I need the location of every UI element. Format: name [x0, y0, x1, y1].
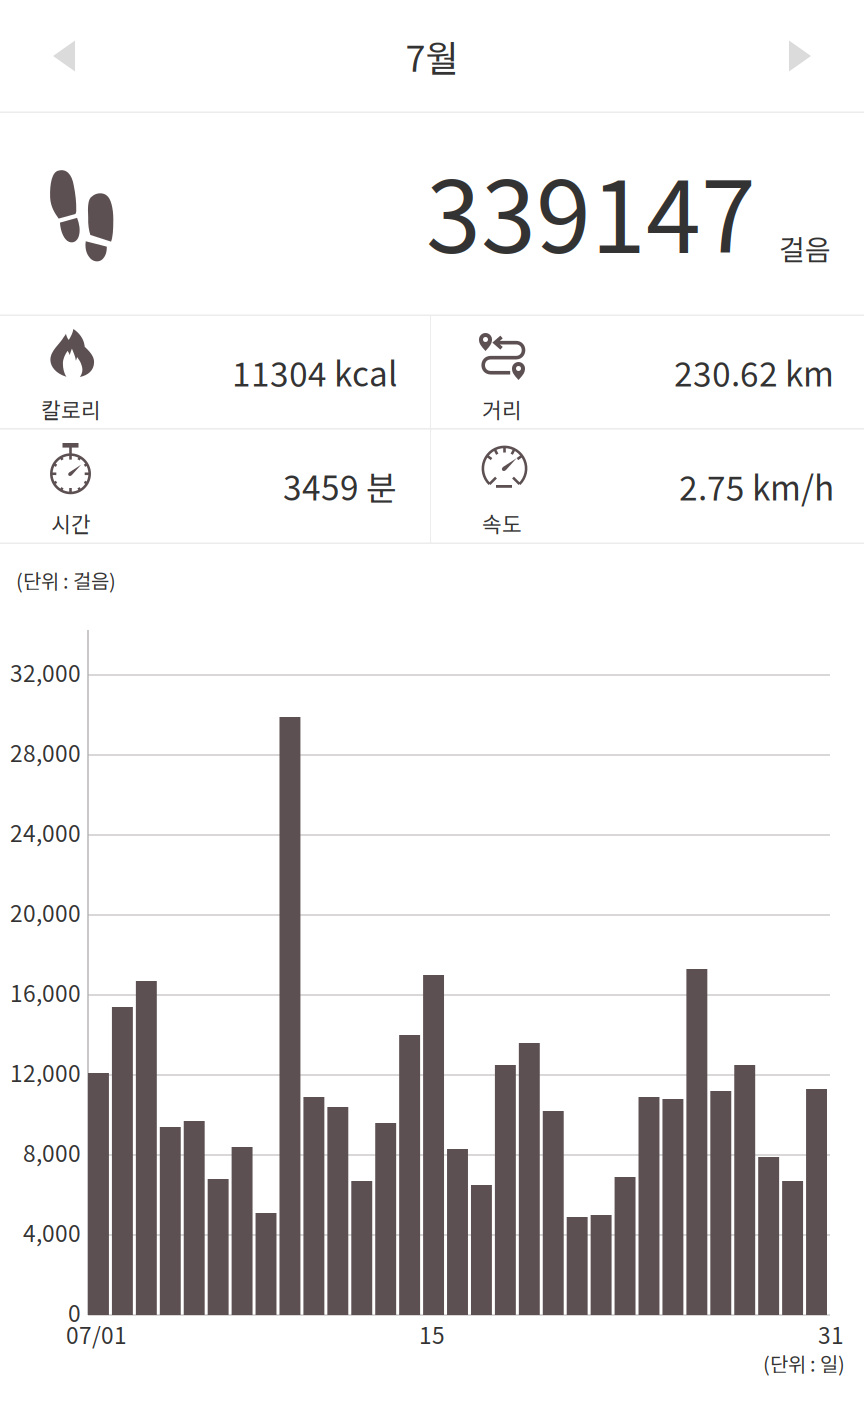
staticText: 칼로리	[41, 394, 101, 424]
staticText: 시간	[51, 508, 91, 538]
button[interactable]: Next month	[736, 0, 864, 112]
staticText: 20,000	[10, 896, 81, 928]
staticText: 7월	[405, 30, 458, 82]
staticText: 2.75 km/h	[679, 462, 834, 510]
staticText: 24,000	[10, 816, 81, 848]
staticText: 32,000	[10, 656, 81, 688]
button[interactable]: 시간	[0, 430, 430, 542]
button[interactable]: 칼로리	[0, 316, 430, 428]
staticText: 속도	[482, 508, 522, 538]
staticText: 12,000	[10, 1056, 81, 1088]
staticText: 3459 분	[283, 462, 397, 510]
staticText: 거리	[482, 394, 522, 424]
staticText: (단위 : 걸음)	[16, 565, 116, 594]
staticText: 11304 kcal	[232, 348, 397, 396]
staticText: 0	[68, 1296, 81, 1328]
staticText: 28,000	[10, 736, 81, 768]
staticText: 230.62 km	[674, 348, 834, 396]
staticText: 4,000	[23, 1216, 81, 1248]
staticText: 16,000	[10, 976, 81, 1008]
staticText: 8,000	[23, 1136, 81, 1168]
staticText: (단위 : 일)	[763, 1348, 845, 1377]
staticText: 걸음	[779, 228, 831, 268]
staticText: 15	[419, 1318, 445, 1350]
staticText: 339147	[426, 139, 756, 281]
button[interactable]: 거리	[431, 316, 861, 428]
button[interactable]: Previous month	[0, 0, 128, 112]
staticText: 07/01	[66, 1318, 127, 1350]
button[interactable]: 속도	[431, 430, 861, 542]
staticText: 31	[818, 1318, 844, 1350]
